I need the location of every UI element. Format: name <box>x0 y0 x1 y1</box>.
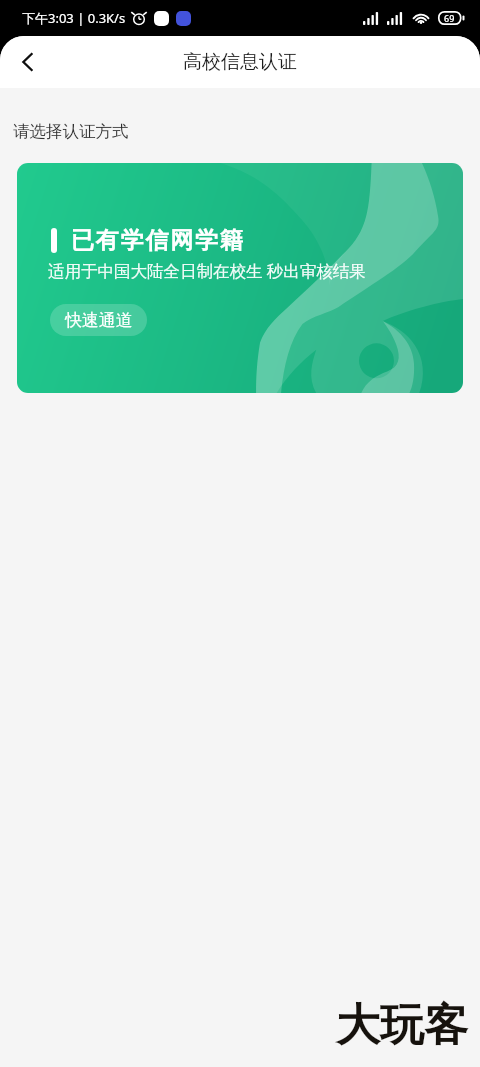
button[interactable]: 已有学信网学籍 <box>17 163 463 393</box>
staticText: 大玩客 <box>336 998 468 1053</box>
staticText: 69 <box>444 12 455 24</box>
staticText: 适用于中国大陆全日制在校生 秒出审核结果 <box>48 259 366 282</box>
staticText: 高校信息认证 <box>183 50 297 74</box>
staticText: 请选择认证方式 <box>13 121 129 142</box>
button[interactable]: Back <box>6 40 50 84</box>
staticText: 已有学信网学籍 <box>71 226 245 255</box>
staticText: 快速通道 <box>65 310 133 331</box>
staticText: 下午3:03 | 0.3K/s <box>22 9 126 27</box>
button[interactable]: 快速通道 <box>50 304 147 336</box>
